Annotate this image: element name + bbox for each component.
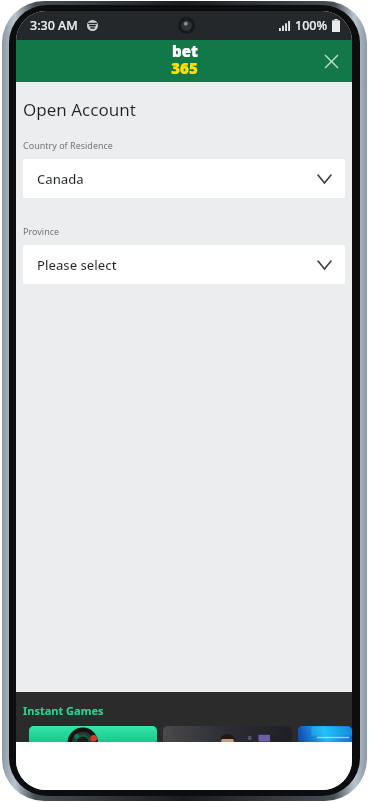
staticText: 365 xyxy=(171,58,198,78)
button[interactable]: Instant game xyxy=(298,726,352,742)
button[interactable]: bet xyxy=(171,41,198,81)
staticText: Province xyxy=(23,225,60,237)
staticText: Country of Residence xyxy=(23,139,113,151)
staticText: 3:30 AM xyxy=(30,17,78,34)
button[interactable]: Please select xyxy=(23,245,345,284)
staticText: 100% xyxy=(295,17,328,34)
button[interactable]: Close xyxy=(310,40,352,82)
staticText: bet xyxy=(172,41,198,61)
staticText: Canada xyxy=(37,170,318,188)
button[interactable]: Live host game xyxy=(163,726,292,742)
button[interactable]: Roulette game xyxy=(29,726,157,742)
staticText: Open Account xyxy=(23,98,136,121)
staticText: Please select xyxy=(37,256,318,274)
button[interactable]: Canada xyxy=(23,159,345,198)
button[interactable]: Instant Games xyxy=(23,703,104,718)
